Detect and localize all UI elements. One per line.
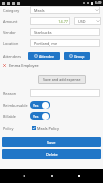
button[interactable]: Back bbox=[21, 173, 27, 179]
button[interactable]: Home bbox=[49, 173, 55, 179]
staticText: Portland, me bbox=[34, 41, 98, 46]
staticText: Location bbox=[3, 41, 19, 46]
button[interactable]: Recents bbox=[76, 173, 82, 179]
button[interactable]: Yes bbox=[30, 112, 50, 120]
button[interactable]: Group bbox=[64, 52, 90, 60]
staticText: 14.77 bbox=[34, 19, 68, 24]
staticText: Yes bbox=[33, 114, 39, 119]
staticText: USD bbox=[78, 19, 94, 24]
staticText: Reason bbox=[3, 91, 17, 96]
button[interactable]: Save and add expense bbox=[38, 75, 86, 84]
button[interactable]: Yes bbox=[30, 101, 50, 109]
staticText: Policy bbox=[3, 126, 14, 131]
staticText: Starbucks bbox=[34, 30, 98, 35]
button[interactable]: Remove attendee bbox=[2, 63, 7, 68]
staticText: Yes bbox=[33, 103, 39, 108]
staticText: Vendor bbox=[3, 30, 16, 35]
staticText: Attendee bbox=[39, 54, 55, 59]
staticText: Category bbox=[3, 8, 20, 13]
button[interactable]: Save bbox=[2, 137, 101, 147]
staticText: Save bbox=[47, 140, 56, 145]
staticText: Attendees bbox=[3, 54, 22, 59]
staticText: Save and add expense bbox=[43, 77, 81, 82]
staticText: Group bbox=[74, 54, 85, 59]
button[interactable]: Attendee bbox=[28, 52, 60, 60]
button[interactable]: Meals Policy bbox=[32, 124, 59, 132]
staticText: Meals Policy bbox=[37, 126, 59, 131]
staticText: Meals bbox=[34, 8, 93, 13]
staticText: Emma Employee bbox=[9, 63, 39, 68]
staticText: 6:39 bbox=[95, 1, 102, 5]
staticText: Amount bbox=[3, 19, 18, 24]
button[interactable]: Delete bbox=[2, 149, 101, 159]
staticText: Billable bbox=[3, 114, 16, 119]
staticText: Delete bbox=[46, 152, 58, 157]
staticText: Reimbursable bbox=[3, 103, 28, 108]
